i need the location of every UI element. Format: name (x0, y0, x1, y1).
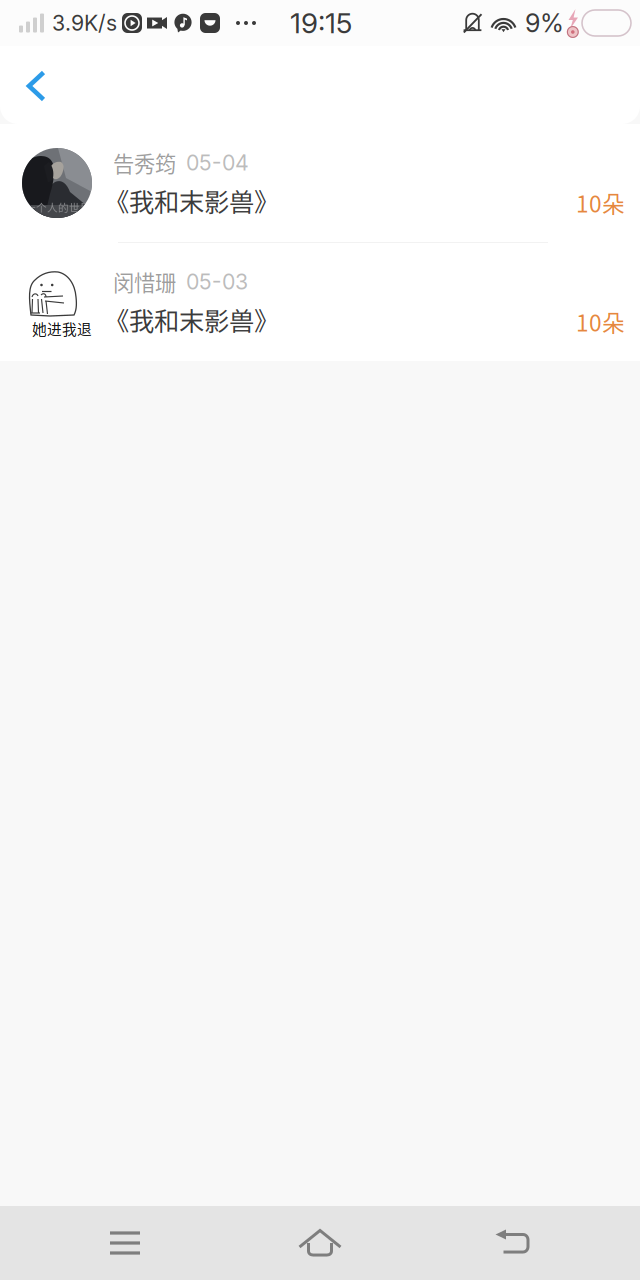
button[interactable]: Home (237, 1209, 432, 1277)
staticText: 《我和末影兽》 (104, 182, 279, 219)
staticText: 10朵 (576, 305, 625, 338)
staticText: 闵惜珊 (113, 266, 176, 297)
button[interactable]: Recent apps (78, 1208, 237, 1277)
button[interactable]: 她进我退 (0, 243, 640, 361)
staticText: 她进我退 (32, 318, 92, 339)
staticText: 一个人的世界 (25, 199, 91, 215)
button[interactable]: 一个人的世界 (0, 124, 640, 242)
staticText: 10朵 (576, 186, 625, 219)
staticText: 9% (525, 8, 564, 38)
staticText: 3.9K/s (52, 10, 117, 36)
button[interactable]: Back (5, 46, 65, 120)
staticText: 告秀筠 (113, 147, 176, 178)
staticText: 19:15 (290, 6, 352, 40)
button[interactable]: Back (432, 1209, 589, 1277)
staticText: 05-03 (186, 269, 248, 295)
staticText: 《我和末影兽》 (104, 301, 279, 338)
staticText: 05-04 (186, 150, 249, 176)
